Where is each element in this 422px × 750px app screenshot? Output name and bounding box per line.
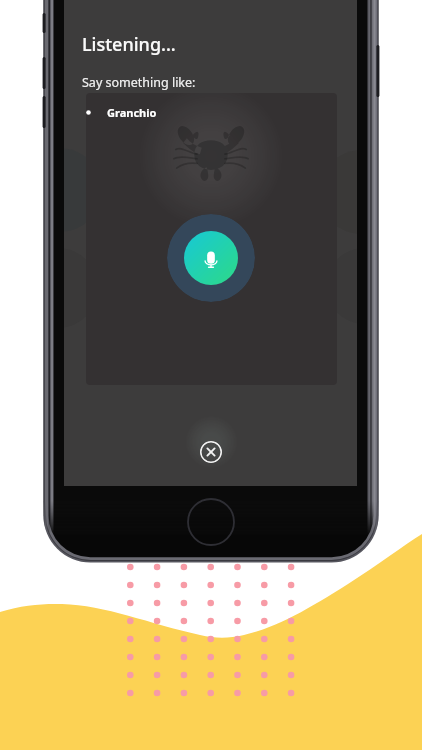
staticText: Granchio bbox=[107, 105, 157, 120]
staticText: Say something like: bbox=[82, 74, 196, 91]
staticText: Listening... bbox=[82, 32, 176, 57]
button[interactable]: Close bbox=[200, 441, 222, 463]
button[interactable]: Microphone bbox=[167, 214, 255, 302]
